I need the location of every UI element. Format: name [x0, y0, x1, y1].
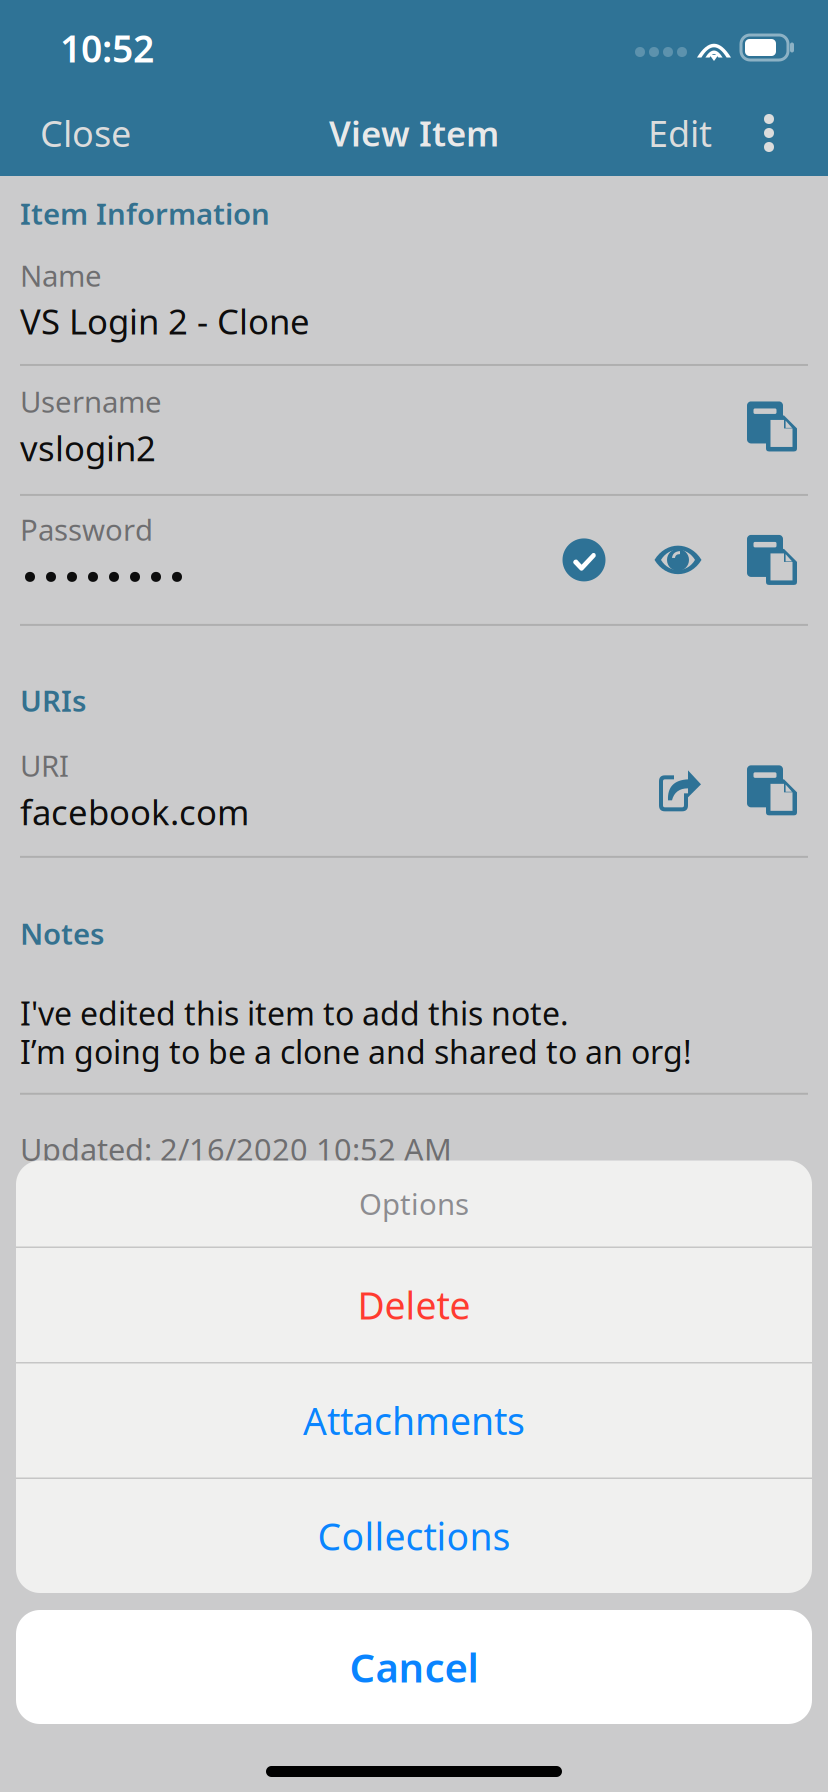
staticText: Edit — [648, 109, 712, 157]
staticText: Attachments — [303, 1396, 525, 1445]
button[interactable]: Toggle password visibility — [653, 535, 703, 585]
staticText: I’m going to be a clone and shared to an… — [20, 1030, 692, 1073]
staticText: VS Login 2 - Clone — [20, 298, 310, 344]
button[interactable]: Collections — [16, 1479, 812, 1593]
staticText: facebook.com — [20, 789, 249, 835]
button[interactable]: Close — [32, 97, 139, 169]
staticText: Delete — [357, 1280, 470, 1330]
staticText: Item Information — [20, 194, 270, 233]
button[interactable]: Copy password — [747, 535, 797, 585]
button[interactable]: Attachments — [16, 1363, 812, 1477]
button[interactable]: Edit — [640, 97, 720, 169]
button[interactable]: Launch URI — [657, 767, 703, 813]
button[interactable]: Copy username — [747, 401, 797, 451]
staticText: Username — [20, 382, 162, 421]
staticText: Notes — [20, 914, 104, 953]
staticText: I've edited this item to add this note. — [20, 992, 569, 1034]
staticText: View Item — [329, 110, 499, 156]
button[interactable]: Delete — [16, 1248, 812, 1362]
staticText: URI — [20, 746, 69, 785]
staticText: URIs — [20, 681, 86, 720]
staticText: Collections — [317, 1511, 510, 1561]
staticText: Password — [20, 510, 153, 549]
staticText: Updated: 2/16/2020 10:52 AM — [20, 1129, 452, 1169]
staticText: Cancel — [349, 1640, 478, 1693]
staticText: vslogin2 — [20, 425, 156, 471]
button[interactable]: Cancel — [16, 1610, 812, 1724]
staticText: Close — [40, 109, 131, 157]
staticText: Name — [20, 256, 102, 295]
staticText: 10:52 — [60, 23, 154, 73]
button[interactable]: Copy URI — [747, 765, 797, 815]
staticText: Options — [359, 1184, 469, 1223]
button[interactable]: Check password — [559, 535, 609, 585]
button[interactable]: More options — [720, 102, 806, 164]
